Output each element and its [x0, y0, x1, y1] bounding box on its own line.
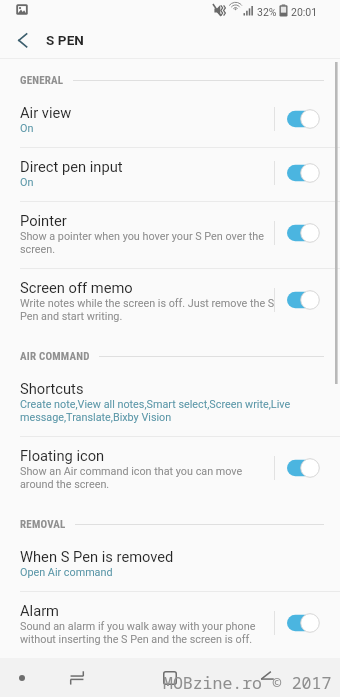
button[interactable]: Toggle on [287, 223, 319, 243]
staticText: Shortcuts [20, 380, 84, 397]
staticText: Show a pointer when you hover your S Pen… [20, 230, 264, 256]
staticText: Direct pen input [20, 158, 123, 175]
button[interactable]: Home [137, 658, 203, 697]
staticText: Sound an alarm if you walk away with you… [20, 620, 256, 646]
staticText: Open Air command [20, 566, 113, 579]
staticText: GENERAL [20, 74, 64, 87]
staticText: 20:01 [291, 6, 318, 18]
button[interactable]: Toggle on [287, 290, 319, 310]
button[interactable]: Recent apps [44, 658, 110, 697]
staticText: S PEN [46, 32, 85, 48]
staticText: On [20, 176, 34, 189]
staticText: When S Pen is removed [20, 548, 174, 565]
button[interactable]: Screen off memo [0, 269, 340, 335]
staticText: Pointer [20, 212, 67, 229]
staticText: Floating icon [20, 447, 105, 464]
staticText: Screen off memo [20, 279, 133, 296]
staticText: Write notes while the screen is off. Jus… [20, 297, 275, 323]
button[interactable]: Pointer [0, 202, 340, 269]
button[interactable]: Navigate up [0, 23, 44, 59]
button[interactable]: Alarm [0, 592, 340, 658]
staticText: REMOVAL [20, 518, 66, 531]
button[interactable]: Floating icon [0, 437, 340, 503]
button[interactable]: Toggle on [287, 163, 319, 183]
button[interactable]: More options [0, 658, 44, 697]
button[interactable]: Shortcuts [0, 370, 340, 437]
button[interactable]: Toggle on [287, 613, 319, 633]
button[interactable]: Back [234, 658, 300, 697]
button[interactable]: Air view [0, 94, 340, 148]
staticText: MOBzine.ro © 2017 [163, 671, 332, 693]
staticText: On [20, 122, 34, 135]
button[interactable]: Toggle on [287, 458, 319, 478]
staticText: Show an Air command icon that you can mo… [20, 465, 243, 491]
button[interactable]: Direct pen input [0, 148, 340, 202]
staticText: 32% [257, 6, 277, 18]
button[interactable]: Toggle on [287, 109, 319, 129]
staticText: Air view [20, 104, 72, 121]
staticText: Create note,View all notes,Smart select,… [20, 398, 291, 424]
staticText: AIR COMMAND [20, 350, 90, 363]
button[interactable]: When S Pen is removed [0, 538, 340, 592]
staticText: Alarm [20, 602, 59, 619]
